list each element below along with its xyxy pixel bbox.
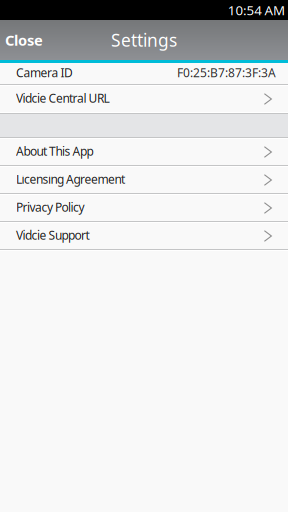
button[interactable]: About This App bbox=[0, 139, 288, 165]
staticText: About This App bbox=[16, 143, 93, 159]
staticText: Licensing Agreement bbox=[16, 171, 125, 187]
staticText: Close bbox=[5, 30, 43, 50]
button[interactable]: Close bbox=[0, 20, 53, 60]
button[interactable]: Licensing Agreement bbox=[0, 167, 288, 193]
button[interactable]: Privacy Policy bbox=[0, 195, 288, 221]
staticText: Camera ID bbox=[16, 64, 73, 80]
staticText: 10:54 AM bbox=[228, 1, 285, 19]
staticText: F0:25:B7:87:3F:3A bbox=[177, 64, 276, 80]
staticText: Vidcie Central URL bbox=[16, 90, 109, 106]
staticText: Privacy Policy bbox=[16, 199, 84, 215]
button[interactable]: Camera ID bbox=[0, 63, 288, 84]
button[interactable]: Vidcie Support bbox=[0, 223, 288, 249]
staticText: Settings bbox=[111, 28, 177, 51]
button[interactable]: Vidcie Central URL bbox=[0, 86, 288, 112]
staticText: Vidcie Support bbox=[16, 227, 89, 243]
